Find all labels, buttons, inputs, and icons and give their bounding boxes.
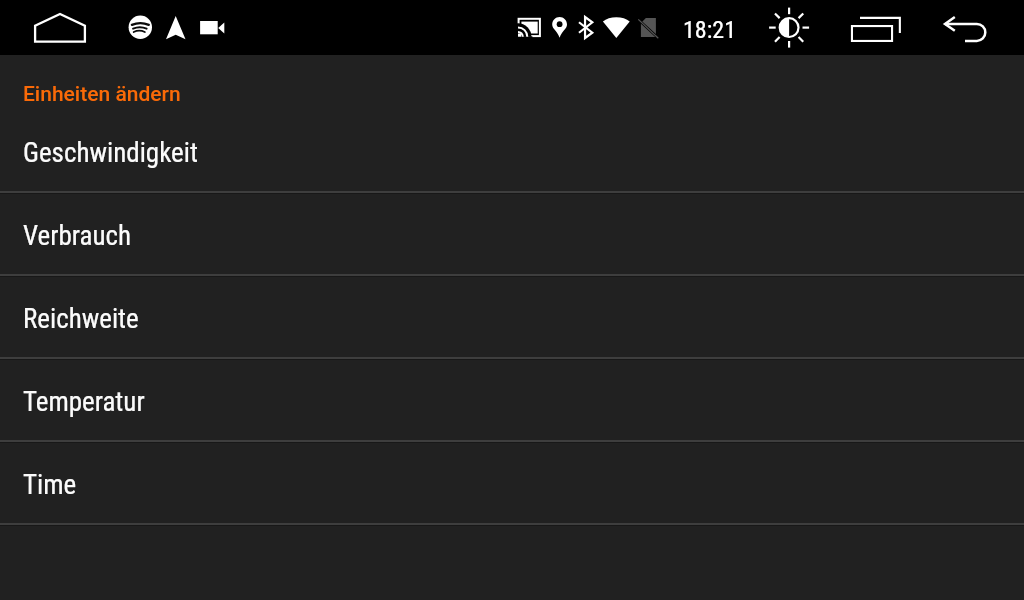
- button[interactable]: Recent apps: [844, 12, 906, 46]
- button[interactable]: Brightness: [762, 2, 818, 54]
- button[interactable]: Time: [0, 441, 1024, 523]
- staticText: Temperatur: [23, 386, 145, 418]
- button[interactable]: Temperatur: [0, 358, 1024, 440]
- staticText: Time: [23, 469, 77, 501]
- staticText: 18:21: [683, 16, 736, 44]
- staticText: Reichweite: [23, 303, 139, 335]
- button[interactable]: Verbrauch: [0, 192, 1024, 274]
- staticText: Einheiten ändern: [23, 82, 181, 107]
- button[interactable]: Camera: [196, 16, 228, 40]
- button[interactable]: Home: [26, 8, 94, 48]
- staticText: Verbrauch: [23, 220, 131, 252]
- button[interactable]: Reichweite: [0, 275, 1024, 357]
- button[interactable]: Spotify: [125, 12, 157, 44]
- button[interactable]: Geschwindigkeit: [0, 109, 1024, 191]
- button[interactable]: Navigation: [162, 12, 190, 42]
- staticText: Geschwindigkeit: [23, 137, 198, 169]
- button[interactable]: Back: [936, 12, 992, 44]
